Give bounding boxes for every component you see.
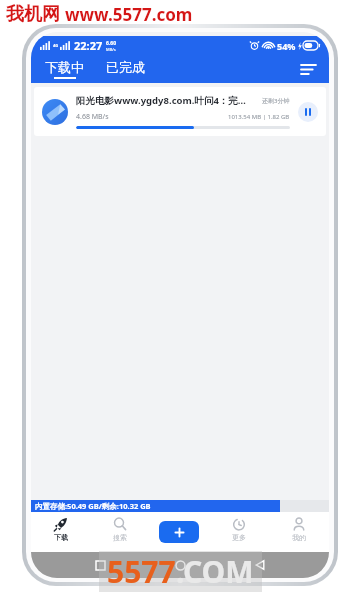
staticText: 还剩3分钟 <box>262 97 290 105</box>
staticText: www.5577.com <box>65 3 193 26</box>
button[interactable]: Add new download <box>159 521 199 543</box>
staticText: .COM <box>176 551 254 592</box>
button[interactable]: 下载 <box>31 512 90 552</box>
staticText: 下载 <box>54 533 68 542</box>
staticText: 下载中 <box>45 59 84 75</box>
staticText: 5577 <box>107 551 176 592</box>
button[interactable]: Pause download <box>298 102 318 122</box>
button[interactable]: 内置存储:50.49 GB/剩余:10.32 GB <box>31 500 329 512</box>
staticText: 22:27 <box>74 38 103 53</box>
staticText: 1013.54 MB | 1.82 GB <box>228 113 290 121</box>
button[interactable]: 我的 <box>269 512 329 552</box>
button[interactable]: 已完成 <box>102 59 149 79</box>
staticText: 我机网 <box>6 3 60 26</box>
button[interactable]: 搜索 <box>90 512 149 552</box>
button[interactable]: 阳光电影www.ygdy8.com.叶问4：完… <box>34 87 326 136</box>
staticText: 我的 <box>292 533 306 542</box>
button[interactable]: Back <box>249 554 271 576</box>
button[interactable]: 下载中 <box>41 57 88 81</box>
staticText: 已完成 <box>106 59 145 75</box>
staticText: 搜索 <box>113 533 127 542</box>
button[interactable]: 更多 <box>209 512 269 552</box>
staticText: 阳光电影www.ygdy8.com.叶问4：完… <box>76 94 258 107</box>
staticText: 54% <box>277 40 296 52</box>
button[interactable]: Home <box>169 554 191 576</box>
staticText: MB/s <box>106 47 116 52</box>
button[interactable]: Recent apps <box>89 554 111 576</box>
staticText: 内置存储:50.49 GB/剩余:10.32 GB <box>35 501 151 511</box>
staticText: 更多 <box>232 533 246 542</box>
staticText: 4G <box>53 43 59 48</box>
staticText: 6.60 <box>106 40 116 47</box>
button[interactable]: Sort and filter <box>293 55 323 83</box>
staticText: 4.68 MB/s <box>76 112 109 122</box>
